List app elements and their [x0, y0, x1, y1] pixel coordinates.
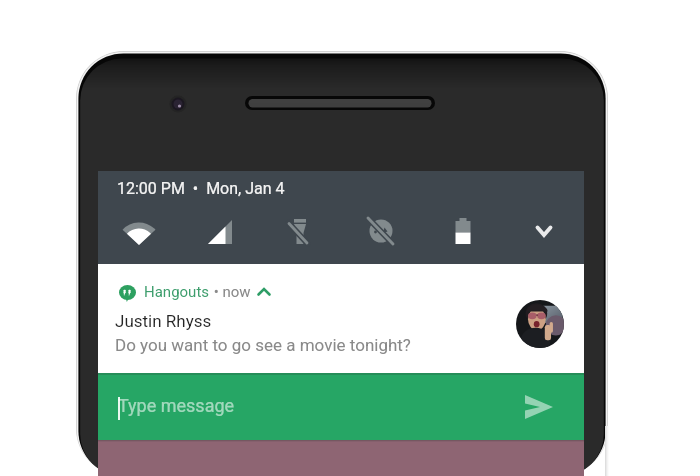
- staticText: Type message: [118, 395, 235, 416]
- staticText: • now: [210, 283, 251, 301]
- button[interactable]: Power button: [605, 426, 609, 476]
- staticText: 12:00 PM • Mon, Jan 4: [117, 179, 285, 198]
- button[interactable]: Send: [517, 386, 559, 428]
- button[interactable]: Expand: [521, 210, 565, 254]
- button[interactable]: Hangouts: [98, 264, 584, 373]
- staticText: Do you want to go see a movie tonight?: [115, 335, 411, 355]
- button[interactable]: Type message: [98, 373, 584, 440]
- button[interactable]: Auto rotate off: [360, 210, 404, 254]
- staticText: Justin Rhyss: [115, 311, 212, 331]
- button[interactable]: Battery: [441, 210, 485, 254]
- button[interactable]: Wi-Fi: [117, 210, 161, 254]
- button[interactable]: Mobile signal: [198, 210, 242, 254]
- staticText: Hangouts: [144, 283, 210, 301]
- button[interactable]: Flashlight off: [279, 210, 323, 254]
